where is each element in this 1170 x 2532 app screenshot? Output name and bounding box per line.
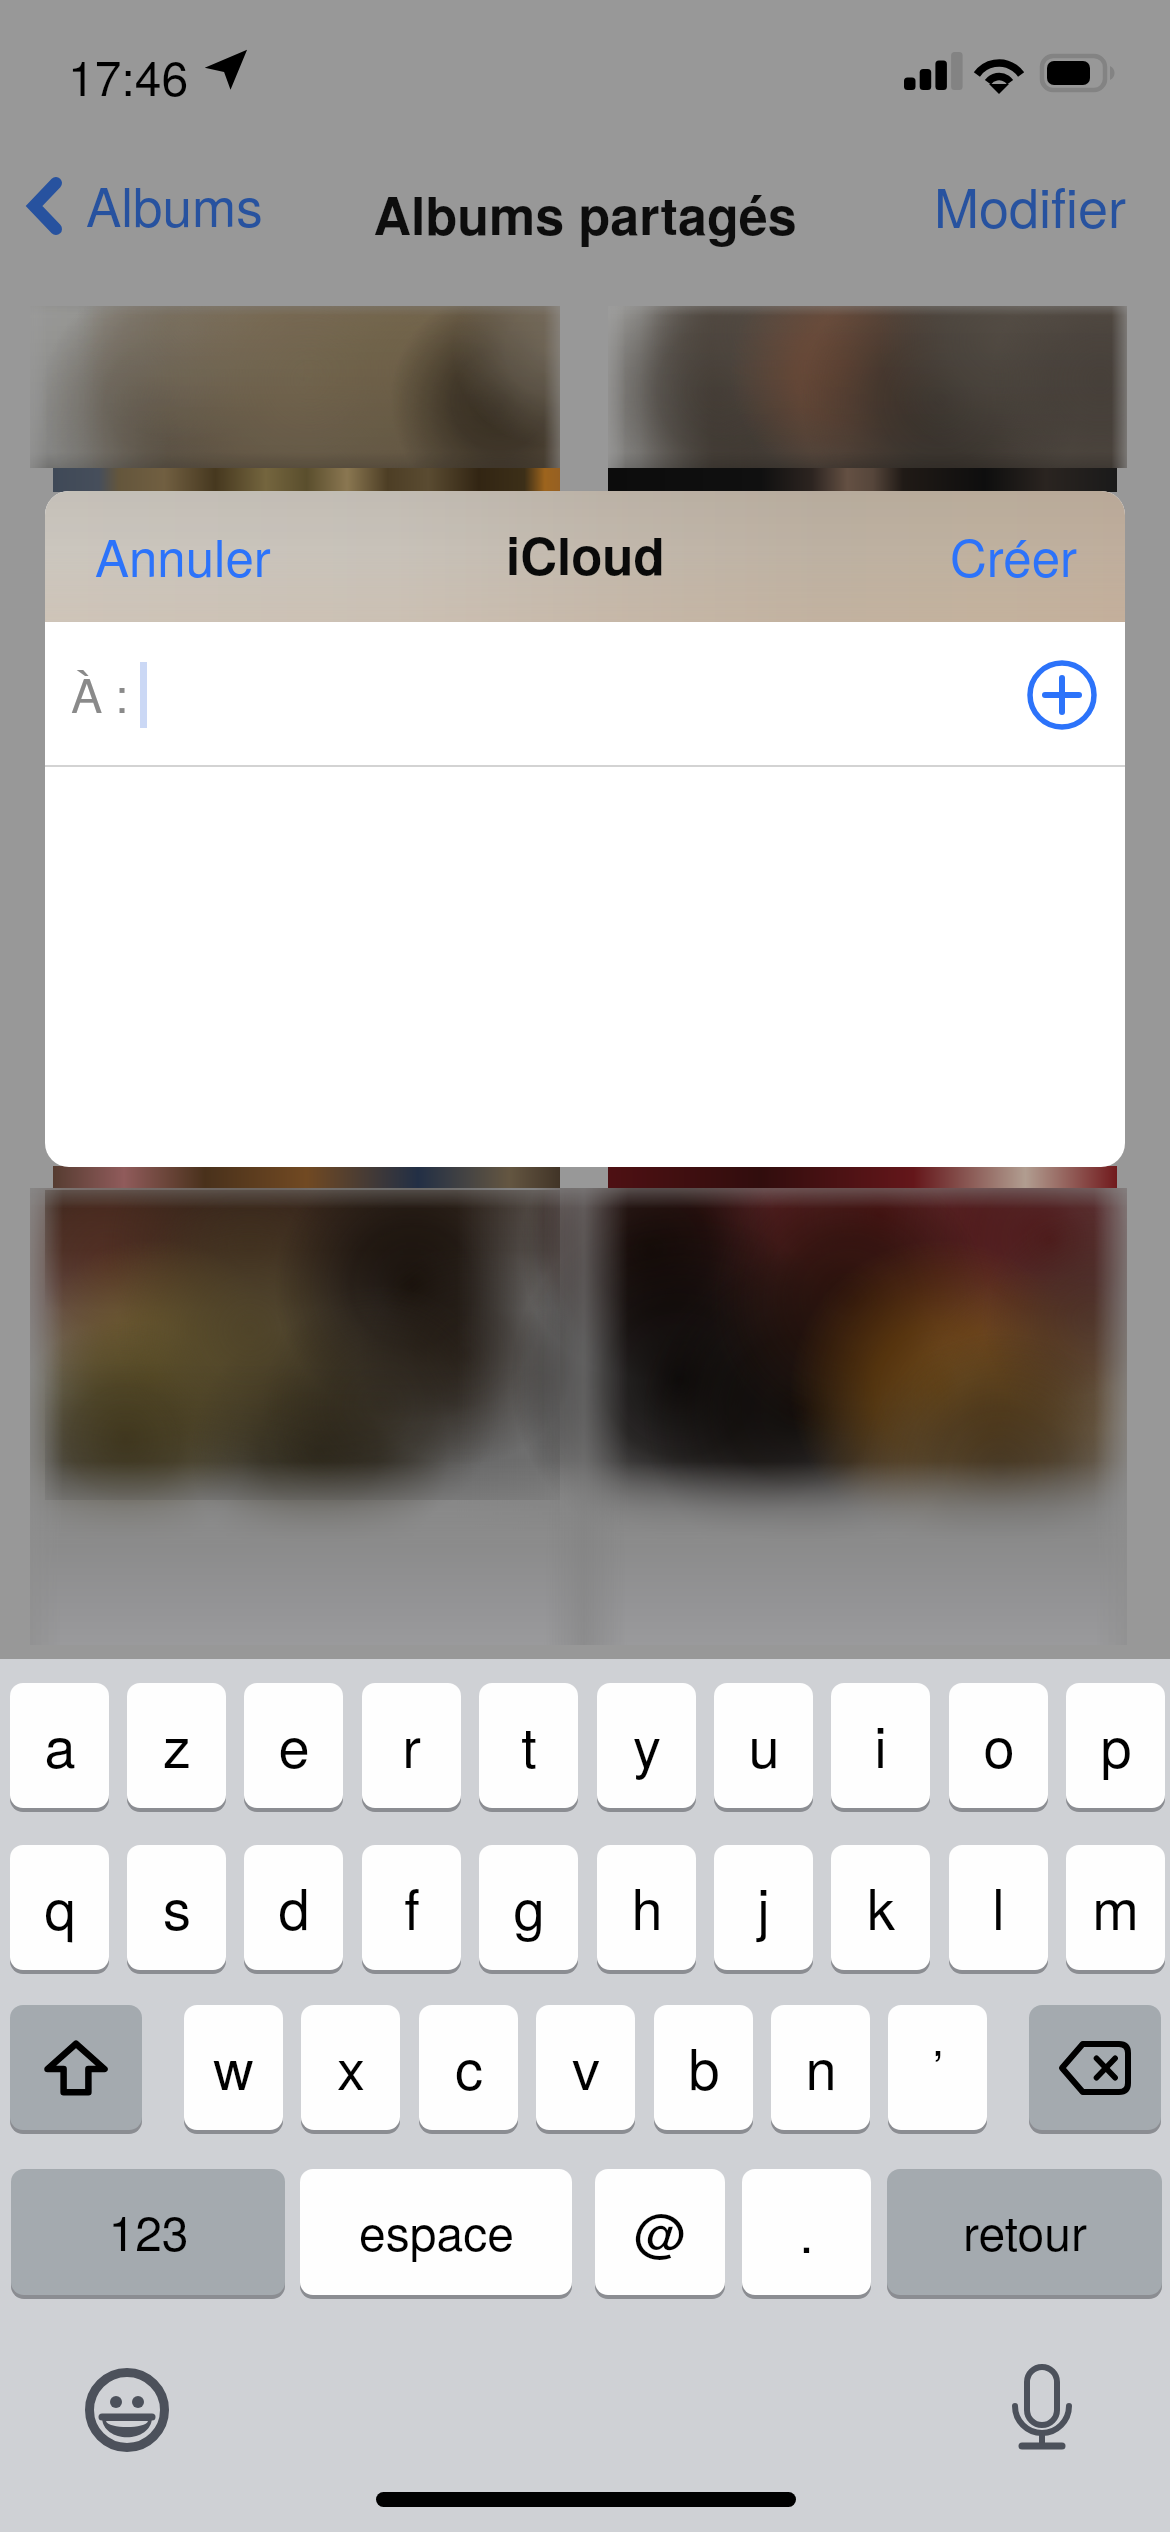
button[interactable]: x bbox=[301, 2005, 400, 2130]
button[interactable]: n bbox=[771, 2005, 870, 2130]
staticText: @ bbox=[634, 2193, 687, 2267]
staticText: Annuler bbox=[95, 518, 271, 591]
button[interactable]: u bbox=[714, 1683, 813, 1808]
staticText: y bbox=[633, 1704, 661, 1784]
button[interactable]: Annuler bbox=[45, 491, 301, 622]
staticText: 123 bbox=[108, 2196, 189, 2265]
staticText: h bbox=[631, 1866, 663, 1946]
button[interactable]: i bbox=[831, 1683, 930, 1808]
button[interactable]: a bbox=[10, 1683, 109, 1808]
button[interactable]: b bbox=[654, 2005, 753, 2130]
staticText: iCloud bbox=[506, 518, 665, 591]
staticText: k bbox=[867, 1866, 895, 1946]
staticText: c bbox=[455, 2026, 483, 2106]
staticText: q bbox=[44, 1866, 76, 1946]
button[interactable]: r bbox=[362, 1683, 461, 1808]
staticText: . bbox=[799, 2193, 814, 2267]
staticText: l bbox=[992, 1866, 1005, 1946]
staticText: n bbox=[805, 2026, 837, 2106]
button[interactable]: g bbox=[479, 1845, 578, 1970]
staticText: a bbox=[44, 1704, 76, 1784]
staticText: e bbox=[278, 1704, 310, 1784]
staticText: z bbox=[163, 1704, 191, 1784]
staticText: Créer bbox=[950, 518, 1077, 591]
staticText: j bbox=[757, 1866, 770, 1946]
staticText: x bbox=[337, 2026, 365, 2106]
staticText: t bbox=[521, 1704, 537, 1784]
staticText: b bbox=[688, 2026, 720, 2106]
staticText: m bbox=[1092, 1866, 1139, 1946]
staticText: 17:46 bbox=[68, 41, 189, 110]
button[interactable]: o bbox=[949, 1683, 1048, 1808]
button[interactable]: espace bbox=[300, 2169, 572, 2295]
button[interactable] bbox=[105, 539, 177, 575]
button[interactable]: Supprimer bbox=[1029, 2005, 1161, 2130]
button[interactable]: @ bbox=[595, 2169, 725, 2295]
button[interactable]: w bbox=[184, 2005, 283, 2130]
staticText: i bbox=[874, 1704, 887, 1784]
staticText: f bbox=[404, 1866, 420, 1946]
button[interactable]: . bbox=[742, 2169, 871, 2295]
button[interactable]: retour bbox=[887, 2169, 1162, 2295]
staticText: espace bbox=[359, 2196, 514, 2265]
button[interactable]: y bbox=[597, 1683, 696, 1808]
button[interactable]: v bbox=[536, 2005, 635, 2130]
button[interactable]: m bbox=[1066, 1845, 1165, 1970]
button[interactable]: z bbox=[127, 1683, 226, 1808]
button[interactable]: t bbox=[479, 1683, 578, 1808]
button[interactable]: s bbox=[127, 1845, 226, 1970]
staticText: Albums partagés bbox=[0, 176, 1170, 250]
staticText: Modifier bbox=[934, 166, 1127, 241]
button[interactable]: Albums bbox=[10, 166, 277, 246]
button[interactable]: Dictée bbox=[1012, 2364, 1072, 2452]
staticText: v bbox=[572, 2026, 600, 2106]
button[interactable]: ’ bbox=[888, 2005, 987, 2130]
staticText: g bbox=[513, 1866, 545, 1946]
staticText: À : bbox=[71, 659, 129, 726]
button[interactable]: e bbox=[244, 1683, 343, 1808]
staticText: w bbox=[213, 2026, 254, 2106]
staticText: p bbox=[1100, 1704, 1132, 1784]
staticText: retour bbox=[963, 2196, 1087, 2265]
button[interactable]: q bbox=[10, 1845, 109, 1970]
button[interactable]: Emoji bbox=[85, 2368, 169, 2452]
button[interactable]: k bbox=[831, 1845, 930, 1970]
staticText: o bbox=[983, 1704, 1015, 1784]
staticText: u bbox=[748, 1704, 780, 1784]
button[interactable]: c bbox=[419, 2005, 518, 2130]
button[interactable]: d bbox=[244, 1845, 343, 1970]
button[interactable]: Modifier bbox=[910, 166, 1151, 246]
button[interactable]: Majuscule bbox=[10, 2005, 142, 2130]
button[interactable]: l bbox=[949, 1845, 1048, 1970]
button[interactable]: j bbox=[714, 1845, 813, 1970]
button[interactable]: Créer bbox=[920, 491, 1125, 622]
button[interactable]: p bbox=[1066, 1683, 1165, 1808]
staticText: Albums bbox=[86, 166, 263, 241]
button[interactable]: f bbox=[362, 1845, 461, 1970]
button[interactable]: 123 bbox=[11, 2169, 285, 2295]
staticText: ’ bbox=[932, 2030, 944, 2102]
staticText: s bbox=[163, 1866, 191, 1946]
button[interactable]: Ajouter un contact bbox=[1027, 660, 1097, 730]
staticText: d bbox=[278, 1866, 310, 1946]
button[interactable]: h bbox=[597, 1845, 696, 1970]
staticText: r bbox=[402, 1704, 421, 1784]
